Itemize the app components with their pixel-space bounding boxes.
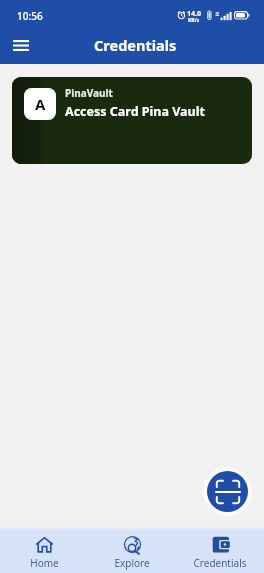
button[interactable]: A [12, 77, 252, 164]
staticText: A [35, 94, 46, 114]
staticText: Explore [114, 556, 150, 570]
staticText: 14.0 [187, 9, 201, 19]
button[interactable]: Home [0, 530, 88, 570]
staticText: Credentials [94, 35, 177, 55]
staticText: Credentials [193, 556, 247, 570]
staticText: KB/s [188, 17, 200, 24]
staticText: Home [30, 556, 59, 570]
staticText: PinaVault [65, 86, 113, 100]
button[interactable]: Credentials [176, 530, 264, 570]
button[interactable]: Scan code [207, 471, 248, 512]
button[interactable]: Explore [88, 530, 176, 570]
staticText: 10:56 [17, 9, 43, 23]
button[interactable]: Menu [5, 29, 37, 61]
staticText: Access Card Pina Vault [65, 103, 205, 120]
